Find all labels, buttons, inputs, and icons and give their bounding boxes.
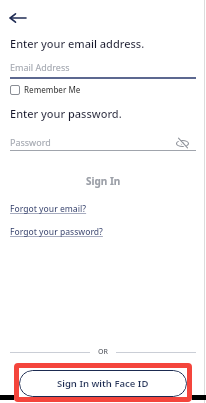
staticText: OR — [98, 347, 108, 357]
staticText: Sign In with Face ID — [57, 377, 149, 390]
button[interactable]: Remember Me — [10, 84, 81, 95]
button[interactable]: Sign In — [0, 173, 206, 189]
button[interactable]: Forgot your password? — [10, 226, 103, 238]
staticText: Email Address — [10, 61, 70, 73]
button[interactable]: Sign In with Face ID — [19, 370, 187, 397]
button[interactable] — [4, 8, 32, 28]
staticText: Enter your email address. — [10, 36, 145, 51]
staticText: Enter your password. — [10, 106, 122, 121]
staticText: Sign In — [86, 174, 121, 188]
staticText: Password — [10, 136, 51, 148]
button[interactable]: Forgot your email? — [10, 203, 87, 215]
button[interactable] — [172, 134, 192, 152]
staticText: Remember Me — [24, 84, 81, 95]
